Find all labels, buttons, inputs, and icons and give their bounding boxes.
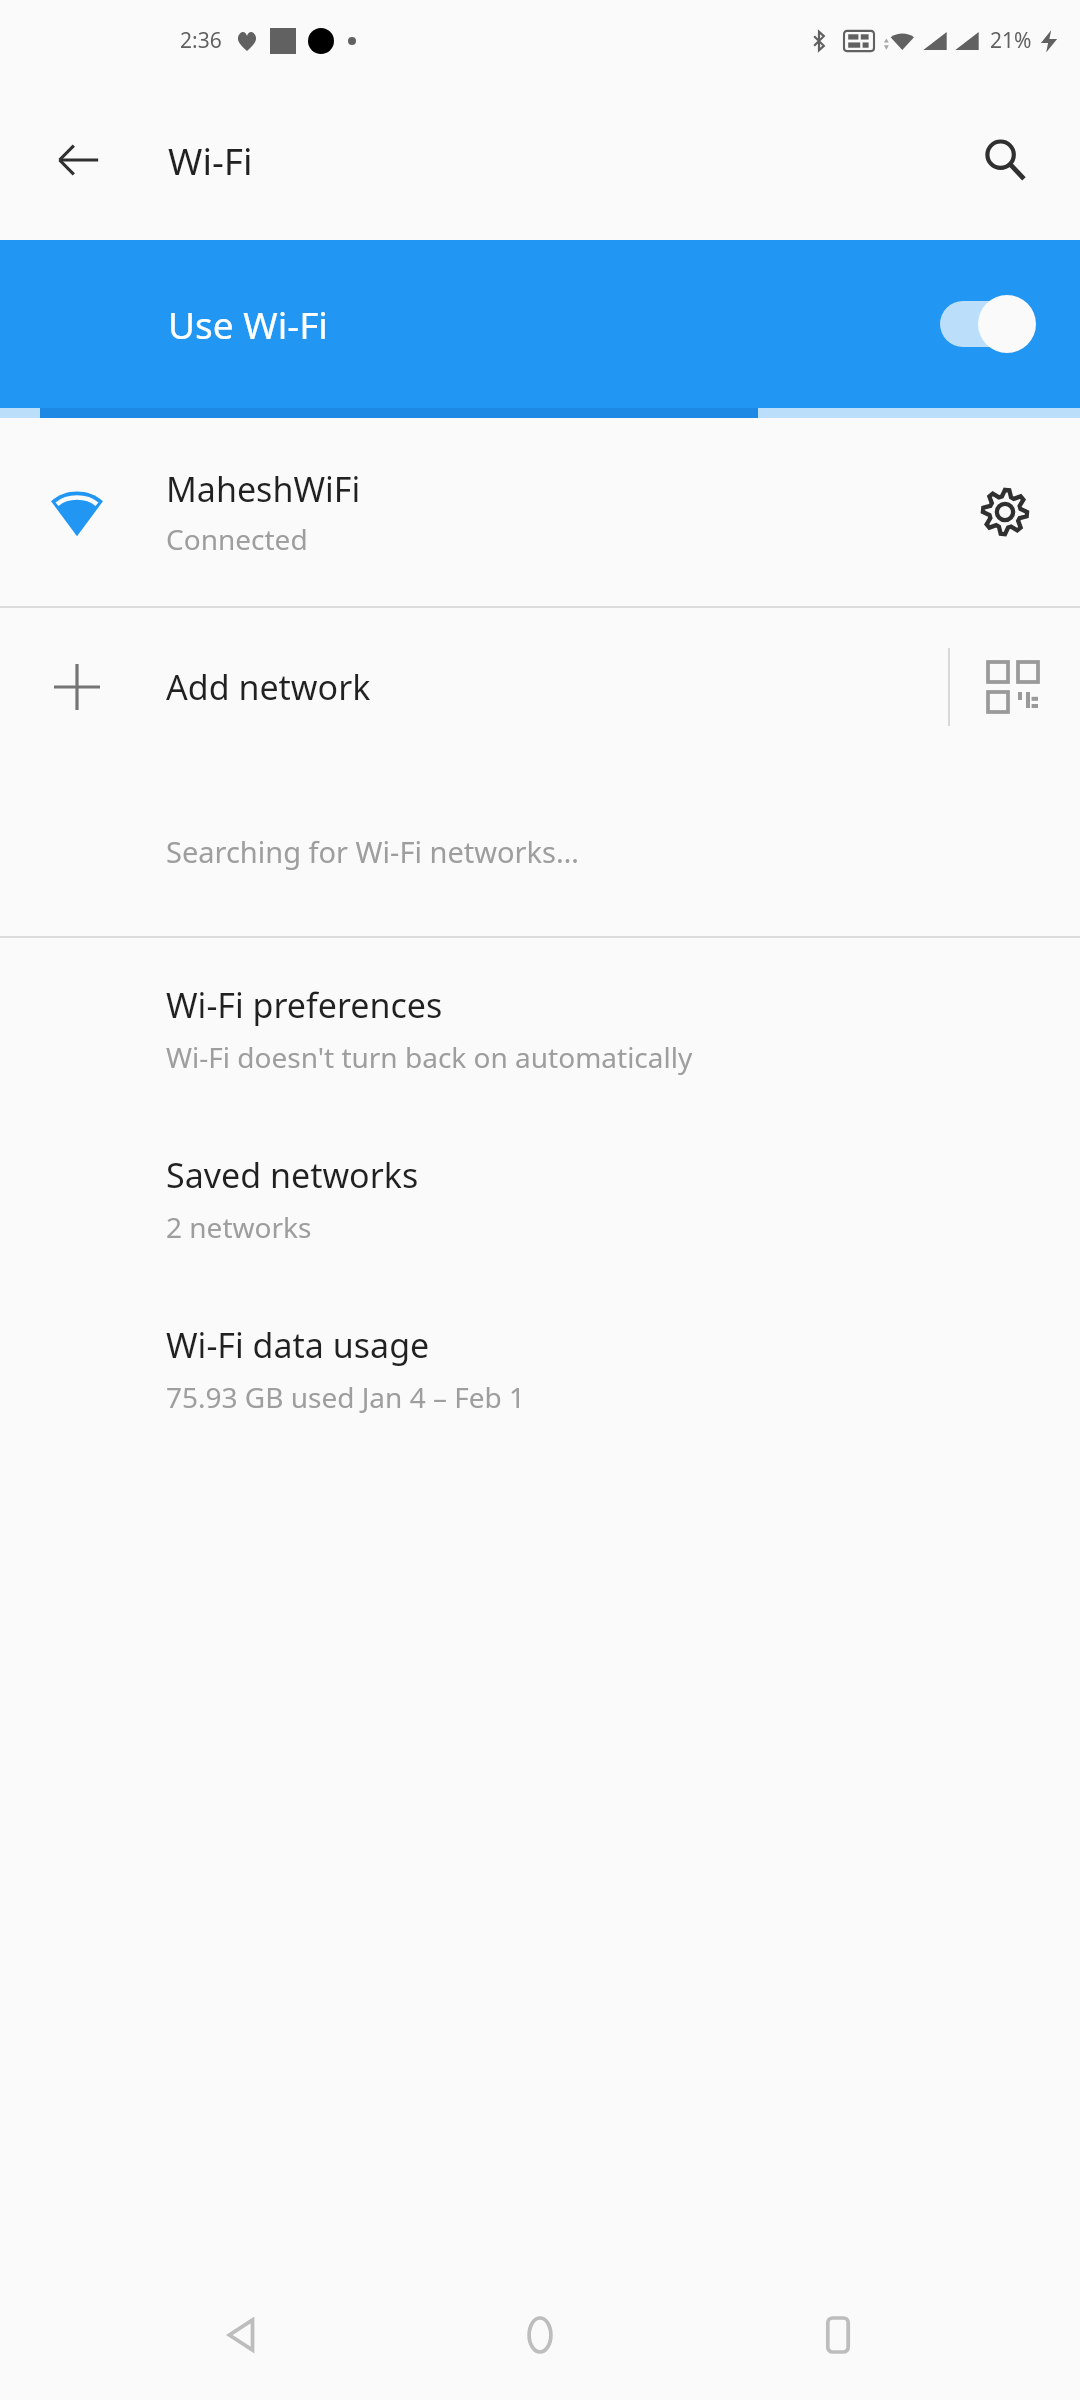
button[interactable]: Saved networks [0,1124,1080,1294]
button[interactable]: Add network [0,608,1080,766]
staticText: Wi-Fi doesn't turn back on automatically [166,1038,693,1076]
button[interactable]: Wi-Fi data usage [0,1294,1080,1464]
staticText: Searching for Wi-Fi networks… [166,832,579,871]
button[interactable]: Back [42,124,114,196]
staticText: Wi-Fi data usage [166,1322,430,1368]
staticText: 2 networks [166,1208,312,1246]
button[interactable]: Network settings [960,467,1050,557]
button[interactable]: Use Wi-Fi [0,240,1080,408]
button[interactable]: MaheshWiFi [0,418,1080,606]
staticText: Add network [166,664,371,710]
staticText: 21% [990,26,1032,55]
staticText: Wi-Fi preferences [166,982,443,1028]
staticText: Use Wi-Fi [168,299,328,349]
button[interactable]: Home [485,2280,595,2390]
staticText: 75.93 GB used Jan 4 – Feb 1 [166,1378,526,1416]
staticText: MaheshWiFi [166,466,361,512]
staticText: 2:36 [180,26,222,55]
button[interactable]: Back [188,2280,298,2390]
button[interactable]: Recent apps [783,2280,893,2390]
staticText: Wi-Fi [168,135,253,185]
button[interactable]: Scan QR code [968,642,1058,732]
button[interactable]: Wi-Fi preferences [0,954,1080,1124]
staticText: Saved networks [166,1152,419,1198]
button[interactable]: Search [966,121,1044,199]
staticText: Connected [166,520,308,558]
